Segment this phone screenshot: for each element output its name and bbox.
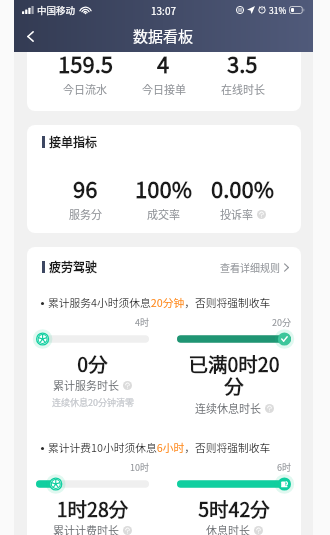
button[interactable]: 查看详细规则 <box>220 260 289 274</box>
staticText: 今日流水 <box>63 81 107 97</box>
staticText: 数据看板 <box>133 25 194 47</box>
staticText: 13:07 <box>151 3 176 17</box>
staticText: 100% <box>135 172 192 204</box>
staticText: 5时42分 <box>180 494 288 522</box>
staticText: 连续休息20分钟清零 <box>52 396 134 409</box>
staticText: 4 <box>157 52 170 79</box>
staticText: 20分 <box>272 316 291 329</box>
staticText: 服务分 <box>69 206 102 222</box>
staticText: 0分 <box>39 349 146 377</box>
staticText: 在线时长 <box>221 81 265 97</box>
staticText: 查看详细规则 <box>220 260 280 274</box>
staticText: 3.5 <box>227 52 258 79</box>
staticText: 1时28分 <box>39 494 146 522</box>
staticText: 休息时长 <box>206 522 250 535</box>
button[interactable]: Back <box>14 20 46 52</box>
staticText: 累计计费10小时须休息6小时，否则将强制收车 <box>48 440 271 456</box>
staticText: 接单指标 <box>49 133 98 150</box>
staticText: 成交率 <box>147 206 180 222</box>
staticText: 投诉率 <box>220 206 253 222</box>
staticText: 0.00% <box>211 172 275 204</box>
staticText: 96 <box>73 172 98 204</box>
staticText: 疲劳驾驶 <box>49 258 98 275</box>
staticText: 159.5 <box>58 52 113 79</box>
staticText: 今日接单 <box>142 81 186 97</box>
staticText: 累计服务4小时须休息20分钟，否则将强制收车 <box>48 295 271 311</box>
staticText: 6时 <box>277 461 291 474</box>
staticText: 已满0时20分 <box>180 349 288 400</box>
staticText: 31% <box>269 4 287 16</box>
staticText: 累计计费时长 <box>53 522 119 535</box>
staticText: 连续休息时长 <box>195 400 261 416</box>
staticText: 4时 <box>135 316 149 329</box>
staticText: 10时 <box>130 461 149 474</box>
staticText: 累计服务时长 <box>53 377 119 393</box>
staticText: 中国移动 <box>37 3 76 17</box>
